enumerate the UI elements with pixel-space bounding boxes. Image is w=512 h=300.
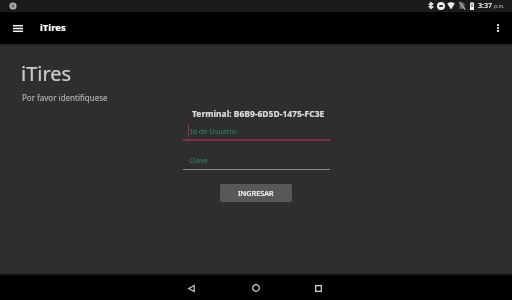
button[interactable]: Back <box>167 276 215 300</box>
button[interactable]: Clave <box>183 152 330 171</box>
staticText: 3:37 <box>478 1 492 11</box>
button[interactable]: Id de Usuario <box>183 122 330 141</box>
staticText: iTires <box>40 21 66 34</box>
staticText: iTires <box>21 60 72 87</box>
staticText: Terminal: B6B9-6D5D-1475-FC3E <box>192 108 325 120</box>
button[interactable]: Home <box>232 276 280 300</box>
staticText: Id de Usuario <box>190 126 237 136</box>
staticText: p.m. <box>494 3 505 10</box>
button[interactable]: Open navigation drawer <box>4 12 32 44</box>
staticText: INGRESAR <box>238 188 274 198</box>
staticText: Clave <box>189 155 208 165</box>
button[interactable]: INGRESAR <box>220 184 292 202</box>
button[interactable]: Recent apps <box>294 276 342 300</box>
staticText: Por favor identifiquese <box>22 92 108 103</box>
button[interactable]: More options <box>484 12 512 44</box>
